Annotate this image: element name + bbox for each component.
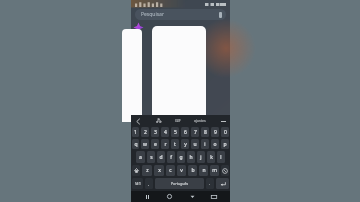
button[interactable]: 0 [221,127,229,137]
button[interactable]: f [167,151,175,163]
button[interactable]: Recents [141,191,153,202]
staticText: !#1 [135,181,141,186]
button[interactable]: i [201,139,209,149]
button[interactable]: t [171,139,179,149]
staticText: 8 [204,129,207,136]
staticText: , [148,181,150,186]
staticText: k [210,154,213,161]
staticText: z [146,167,149,174]
staticText: h [189,154,193,161]
staticText: t [174,141,176,148]
button[interactable]: h [187,151,195,163]
staticText: . [209,181,211,186]
button[interactable]: 3 [151,127,159,137]
button[interactable]: 5 [171,127,179,137]
button[interactable]: !#1 [132,178,143,189]
staticText: j [200,154,202,161]
button[interactable]: . [206,178,214,189]
staticText: g [179,154,183,161]
button[interactable]: j [197,151,205,163]
button[interactable]: l [217,151,225,163]
staticText: f [170,154,172,161]
button[interactable]: d [157,151,165,163]
button[interactable]: m [210,165,219,176]
staticText: d [159,154,163,161]
staticText: Português [171,181,189,186]
button[interactable]: x [154,165,164,176]
button[interactable]: v [177,165,186,176]
button[interactable]: w [141,139,149,149]
button[interactable]: q [132,139,139,149]
button[interactable]: a [136,151,145,163]
staticText: i [204,141,206,148]
staticText: l [220,154,222,161]
button[interactable]: Pesquisar [135,9,226,20]
button[interactable]: Collapse keyboard [219,117,227,125]
staticText: a [139,154,142,161]
button[interactable]: ⁂ [154,116,163,125]
button[interactable]: Keyboard [208,191,220,202]
staticText: 6 [184,129,187,136]
staticText: Pesquisar [141,11,164,18]
staticText: b [191,167,195,174]
staticText: 2 [144,129,147,136]
staticText: c [169,167,172,174]
button[interactable]: n [199,165,208,176]
staticText: 3 [154,129,157,136]
button[interactable]: z [142,165,152,176]
button[interactable]: 1 [132,127,139,137]
button[interactable]: p [221,139,229,149]
staticText: r [164,141,167,148]
button[interactable]: Home [163,191,175,202]
button[interactable]: k [207,151,215,163]
button[interactable]: 4 [161,127,169,137]
staticText: p [223,141,227,148]
button[interactable]: o [211,139,219,149]
button[interactable]: 8 [201,127,209,137]
staticText: 4 [164,129,167,136]
button[interactable]: , [145,178,153,189]
staticText: w [143,141,147,148]
button[interactable]: Enter [216,178,229,189]
staticText: ⁂ [156,117,162,124]
staticText: v [180,167,183,174]
button[interactable]: e [151,139,159,149]
button[interactable] [152,26,206,119]
staticText: s [150,154,153,161]
staticText: u [193,141,197,148]
button[interactable]: GIF [175,118,181,123]
staticText: m [212,167,217,174]
staticText: x [158,167,161,174]
button[interactable]: Key [221,165,229,176]
staticText: e [154,141,157,148]
staticText: 1 [134,129,137,136]
staticText: 5 [174,129,177,136]
button[interactable]: Assistant sparkle [133,22,144,33]
button[interactable]: 9 [211,127,219,137]
button[interactable]: Back [186,191,198,202]
button[interactable]: Português [155,178,204,189]
button[interactable]: Key [132,165,140,176]
button[interactable]: ajustes [194,118,206,123]
button[interactable]: g [177,151,185,163]
button[interactable] [122,29,142,122]
button[interactable]: 2 [141,127,149,137]
staticText: y [184,141,187,148]
button[interactable]: Share [134,117,142,125]
staticText: 0 [224,129,227,136]
button[interactable]: 7 [191,127,199,137]
button[interactable]: r [161,139,169,149]
staticText: 7 [194,129,197,136]
staticText: q [134,141,138,148]
button[interactable]: s [147,151,155,163]
button[interactable]: b [188,165,197,176]
button[interactable]: c [166,165,175,176]
button[interactable]: 6 [181,127,189,137]
staticText: 9 [214,129,217,136]
button[interactable]: y [181,139,189,149]
staticText: o [213,141,217,148]
button[interactable]: u [191,139,199,149]
staticText: n [202,167,206,174]
